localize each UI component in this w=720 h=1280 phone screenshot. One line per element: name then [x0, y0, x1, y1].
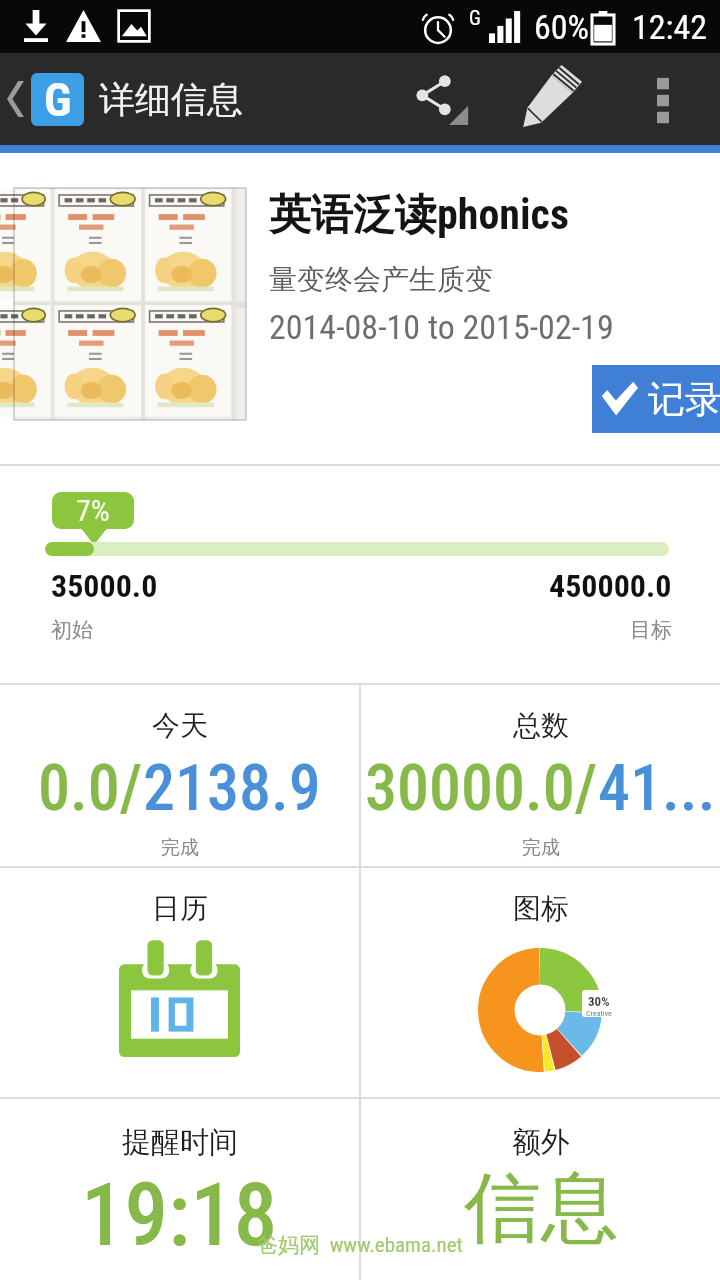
staticText: 提醒时间 — [122, 1124, 238, 1161]
staticText: 总数 — [513, 708, 569, 743]
staticText: 图标 — [513, 891, 569, 926]
staticText: 详细信息 — [99, 77, 243, 122]
staticText: 450000.0 — [549, 567, 672, 605]
staticText: 2138.9 — [143, 751, 321, 826]
staticText: 英语泛读phonics — [269, 189, 570, 242]
staticText: 60% — [534, 7, 590, 47]
staticText: G — [469, 6, 481, 29]
staticText: 额外 — [512, 1124, 570, 1161]
staticText: 初始 — [51, 617, 93, 643]
button[interactable]: More options — [634, 53, 692, 145]
button[interactable]: 额外 — [361, 1099, 720, 1280]
staticText: 12:42 — [632, 7, 708, 47]
button[interactable]: 记录 — [592, 365, 720, 433]
button[interactable]: 今天 — [0, 685, 359, 866]
button[interactable]: 日历 — [0, 868, 359, 1097]
staticText: 30000.0/ — [365, 751, 598, 826]
staticText: Creative — [586, 1009, 612, 1017]
staticText: 完成 — [161, 836, 199, 860]
staticText: 记录 — [648, 376, 720, 423]
staticText: 35000.0 — [51, 567, 158, 605]
staticText: 7% — [76, 493, 110, 528]
staticText: 30% — [588, 994, 610, 1009]
staticText: G — [44, 73, 72, 125]
staticText: 41... — [598, 751, 716, 826]
button[interactable]: 图标 — [361, 868, 720, 1097]
other: Back — [0, 53, 31, 145]
button[interactable]: 总数 — [361, 685, 720, 866]
staticText: 信息 — [464, 1160, 618, 1257]
staticText: 爸妈网 www.ebama.net — [257, 1232, 463, 1258]
staticText: 今天 — [152, 708, 208, 743]
staticText: 19:18 — [81, 1164, 278, 1266]
button[interactable]: Share — [404, 53, 488, 145]
button[interactable]: Edit — [512, 53, 594, 145]
staticText: 目标 — [630, 617, 672, 643]
staticText: 2014-08-10 to 2015-02-19 — [269, 307, 614, 347]
button[interactable]: 提醒时间 — [0, 1099, 359, 1280]
staticText: 量变终会产生质变 — [269, 262, 493, 297]
staticText: 0.0/ — [38, 751, 143, 826]
staticText: 完成 — [522, 836, 560, 860]
staticText: 日历 — [152, 891, 208, 926]
button[interactable]: Back — [0, 53, 243, 145]
